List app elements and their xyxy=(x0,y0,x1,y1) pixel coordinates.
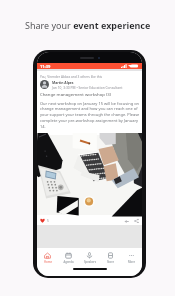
staticText: Jan 10, 3:30 PM • Senior Education Consu… xyxy=(52,85,123,89)
staticText: More xyxy=(128,260,135,264)
staticText: Home xyxy=(44,260,52,264)
button[interactable]: Store xyxy=(100,252,121,264)
staticText: Our next workshop on January 15 will be … xyxy=(40,101,140,130)
staticText: Martin Alpes xyxy=(52,80,74,85)
staticText: 5 xyxy=(47,219,49,223)
button[interactable]: More xyxy=(121,252,142,264)
staticText: Speakers xyxy=(84,260,96,264)
button[interactable]: Agenda xyxy=(58,252,79,264)
staticText: Agenda xyxy=(63,260,74,264)
staticText: Share your event experience xyxy=(25,19,151,31)
button[interactable]: Home xyxy=(37,252,58,264)
other: Share xyxy=(134,218,139,223)
staticText: You, Virender Abbas and 3 others like th… xyxy=(40,75,103,79)
staticText: 11:39 xyxy=(40,64,51,69)
button[interactable]: Speakers xyxy=(79,252,100,264)
other: Reply xyxy=(124,218,129,223)
staticText: Store xyxy=(107,260,114,264)
staticText: Change management workshop (3) xyxy=(40,91,112,97)
